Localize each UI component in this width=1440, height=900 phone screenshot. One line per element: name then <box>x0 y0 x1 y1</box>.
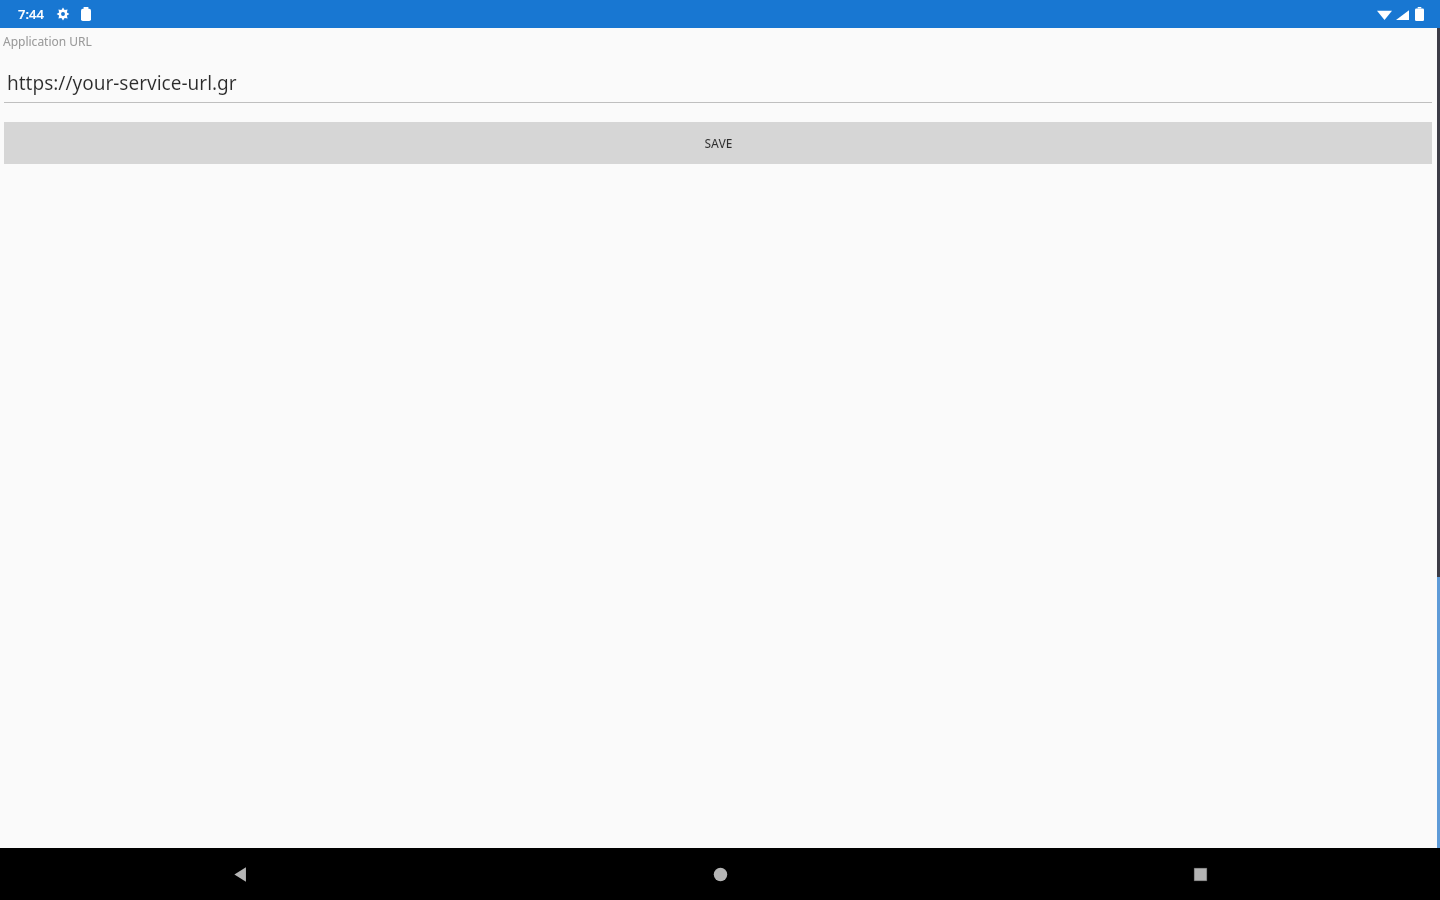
staticText: 7:44 <box>18 5 44 23</box>
button[interactable]: SAVE <box>4 122 1432 164</box>
staticText: Application URL <box>3 33 92 49</box>
staticText: https://your-service-url.gr <box>7 70 237 96</box>
staticText: SAVE <box>704 135 733 151</box>
button[interactable]: Home <box>480 848 960 900</box>
button[interactable]: Recent apps <box>960 848 1440 900</box>
button[interactable]: Back <box>0 848 480 900</box>
